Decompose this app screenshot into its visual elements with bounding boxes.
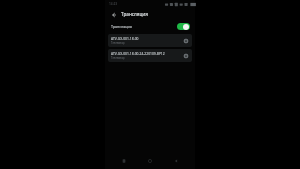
staticText: ATV-GX-001-18-00-24-220109-BP12 bbox=[111, 51, 165, 55]
button[interactable]: Настройки устройства bbox=[181, 51, 190, 60]
staticText: ATV-GX-001-18-00 bbox=[111, 36, 139, 40]
button[interactable]: Настройки устройства bbox=[181, 36, 190, 45]
staticText: 14:23 bbox=[109, 2, 118, 6]
button[interactable]: Назад bbox=[108, 9, 119, 20]
staticText: Телевизор bbox=[111, 56, 125, 60]
button[interactable]: ATV-GX-001-18-00-24-220109-BP12 bbox=[108, 49, 192, 62]
button[interactable]: Главный экран bbox=[144, 155, 156, 167]
button[interactable]: Переключатель трансляции bbox=[177, 23, 190, 30]
staticText: Трансляция bbox=[121, 11, 148, 17]
button[interactable]: Трансляция bbox=[105, 20, 195, 32]
staticText: Телевизор bbox=[111, 41, 125, 45]
button[interactable]: Обзор bbox=[118, 155, 130, 167]
staticText: Трансляция bbox=[111, 24, 132, 29]
button[interactable]: ATV-GX-001-18-00 bbox=[108, 34, 192, 47]
button[interactable]: Назад bbox=[170, 155, 182, 167]
